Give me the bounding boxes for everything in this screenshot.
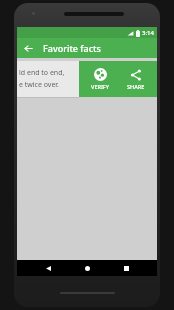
staticText: Favorite facts <box>43 42 101 54</box>
staticText: VERIFY <box>91 83 109 90</box>
button[interactable]: ld end to end, <box>17 61 79 97</box>
button[interactable]: SHARE <box>120 67 152 92</box>
button[interactable]: VERIFY <box>84 66 116 92</box>
staticText: ld end to end, <box>19 68 65 78</box>
button[interactable]: Back <box>40 260 56 276</box>
button[interactable]: Home <box>79 260 95 276</box>
staticText: e twice over. <box>19 80 59 90</box>
button[interactable]: Back <box>20 40 36 56</box>
staticText: SHARE <box>127 83 145 90</box>
button[interactable]: Recent apps <box>118 260 134 276</box>
staticText: 3:14 <box>142 29 154 37</box>
